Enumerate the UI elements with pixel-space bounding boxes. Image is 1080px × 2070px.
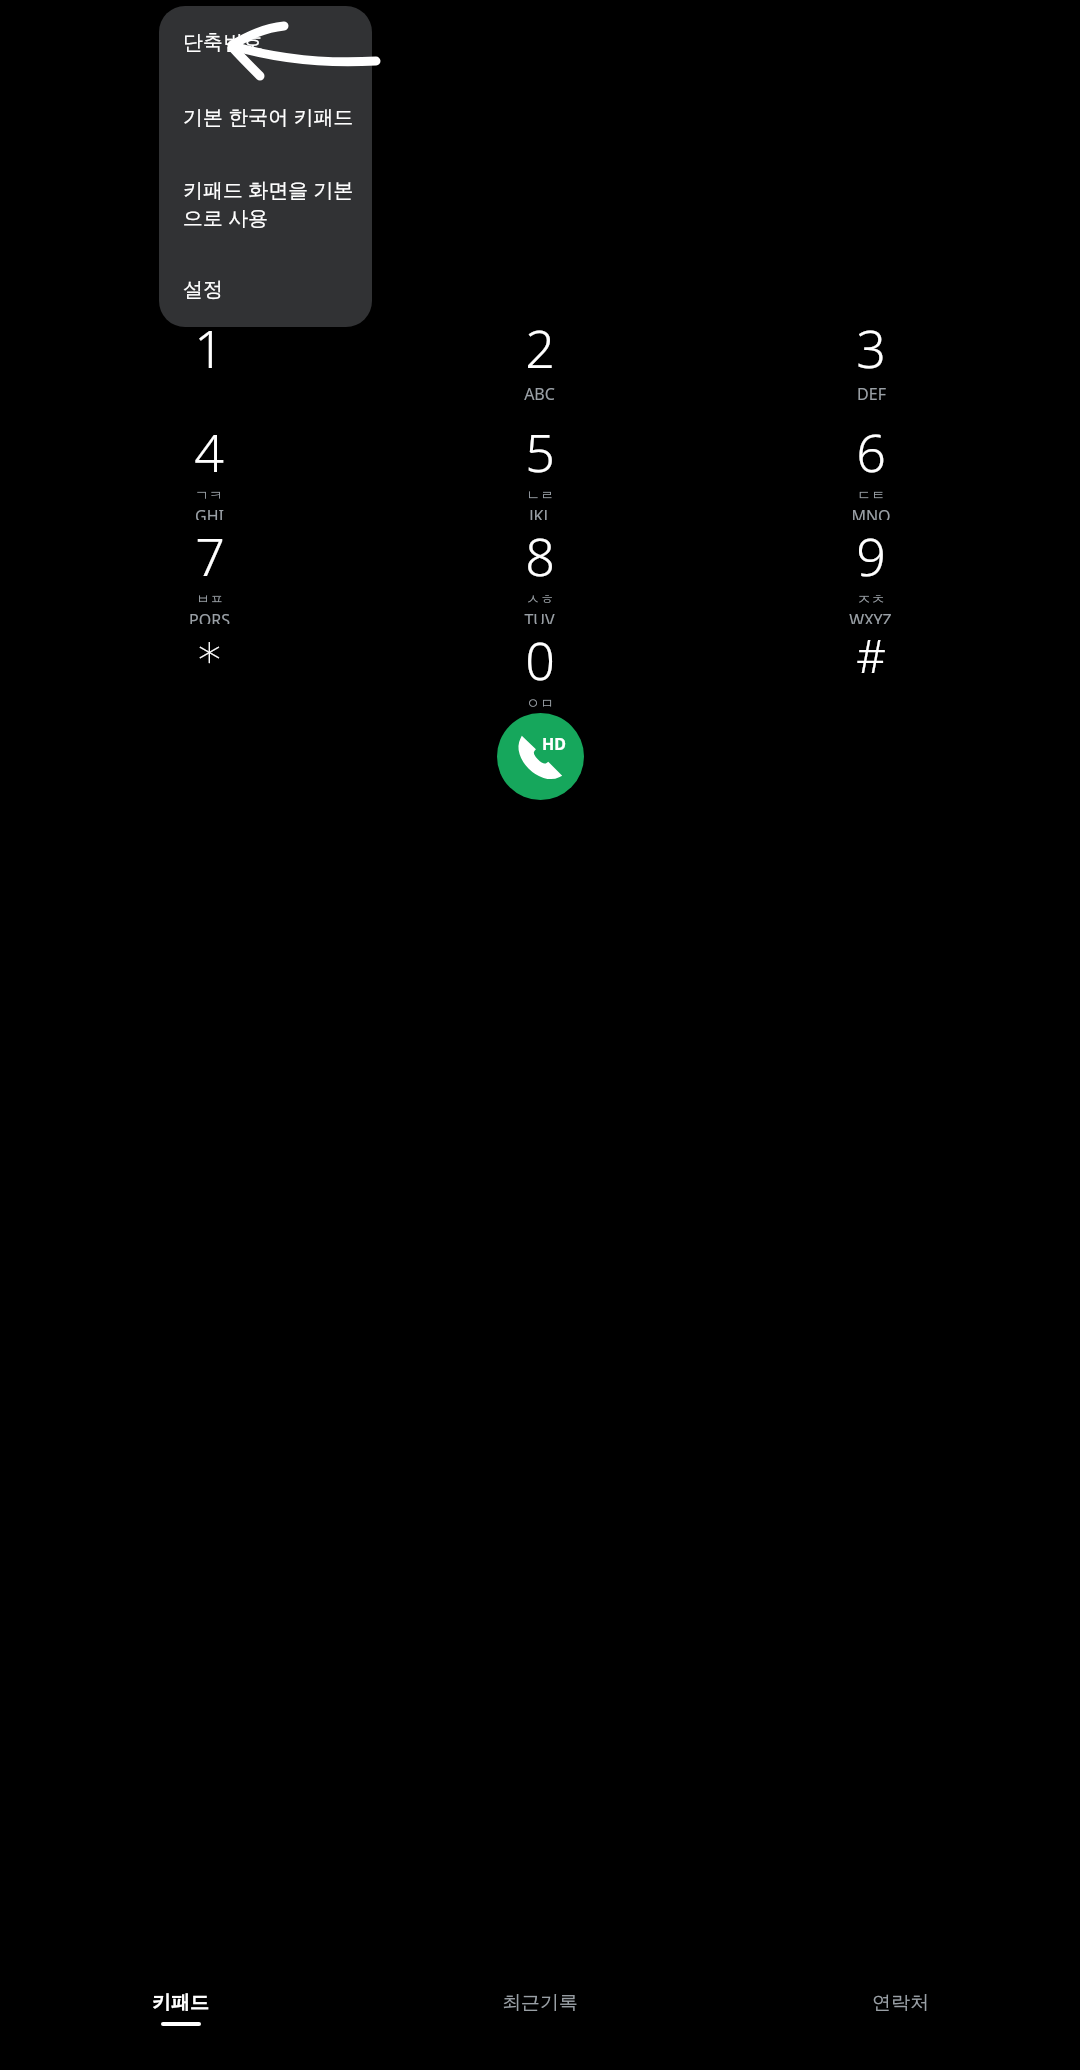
- staticText: ㄷㅌ: [857, 487, 885, 505]
- staticText: 5: [525, 416, 555, 487]
- other: Arrow annotation: [224, 14, 384, 74]
- staticText: ㅈㅊ: [857, 591, 885, 609]
- staticText: TUV: [524, 609, 555, 624]
- staticText: ㅇㅁ: [526, 695, 554, 713]
- staticText: MNO: [851, 505, 891, 520]
- button[interactable]: 설정: [159, 277, 372, 302]
- staticText: 설정: [183, 277, 223, 302]
- staticText: ㅅㅎ: [526, 591, 554, 609]
- button[interactable]: Call: [497, 713, 584, 800]
- button[interactable]: 3: [705, 312, 1036, 416]
- button[interactable]: 단축번호: [159, 30, 372, 55]
- button[interactable]: 1: [44, 312, 374, 416]
- staticText: 8: [525, 520, 555, 591]
- button[interactable]: 0: [374, 624, 705, 728]
- staticText: 9: [856, 520, 886, 591]
- staticText: 키패드 화면을 기본으로 사용: [183, 176, 372, 231]
- button[interactable]: 기본 한국어 키패드: [159, 103, 372, 130]
- staticText: 연락처: [872, 1991, 929, 2015]
- button[interactable]: ∗: [44, 624, 374, 728]
- staticText: 3: [856, 312, 886, 383]
- staticText: 1: [194, 312, 224, 383]
- button[interactable]: 2: [374, 312, 705, 416]
- staticText: GHI: [195, 505, 224, 520]
- staticText: ㅂㅍ: [196, 591, 224, 609]
- staticText: 4: [194, 416, 224, 487]
- staticText: WXYZ: [849, 609, 892, 624]
- staticText: 2: [525, 312, 555, 383]
- staticText: JKL: [529, 505, 552, 520]
- staticText: #: [856, 624, 886, 687]
- button[interactable]: 8: [374, 520, 705, 624]
- staticText: ABC: [524, 383, 555, 405]
- staticText: 키패드: [152, 1991, 209, 2015]
- button[interactable]: 키패드 화면을 기본으로 사용: [159, 176, 372, 231]
- staticText: 최근기록: [502, 1991, 578, 2015]
- staticText: HD: [542, 733, 566, 755]
- button[interactable]: 6: [705, 416, 1036, 520]
- staticText: 6: [856, 416, 886, 487]
- button[interactable]: 키패드: [0, 1978, 360, 2070]
- button[interactable]: 9: [705, 520, 1036, 624]
- staticText: +: [535, 713, 545, 728]
- staticText: ∗: [195, 624, 224, 678]
- staticText: 단축번호: [183, 30, 263, 55]
- button[interactable]: 7: [44, 520, 374, 624]
- staticText: ㄱㅋ: [195, 487, 223, 505]
- staticText: 7: [195, 520, 225, 591]
- button[interactable]: 최근기록: [360, 1978, 720, 2070]
- staticText: DEF: [857, 383, 886, 405]
- staticText: ㄴㄹ: [526, 487, 554, 505]
- staticText: 0: [525, 624, 555, 695]
- staticText: 기본 한국어 키패드: [183, 103, 354, 130]
- button[interactable]: 4: [44, 416, 374, 520]
- button[interactable]: 5: [374, 416, 705, 520]
- button[interactable]: 연락처: [720, 1978, 1080, 2070]
- button[interactable]: #: [705, 624, 1036, 728]
- staticText: PQRS: [189, 609, 230, 624]
